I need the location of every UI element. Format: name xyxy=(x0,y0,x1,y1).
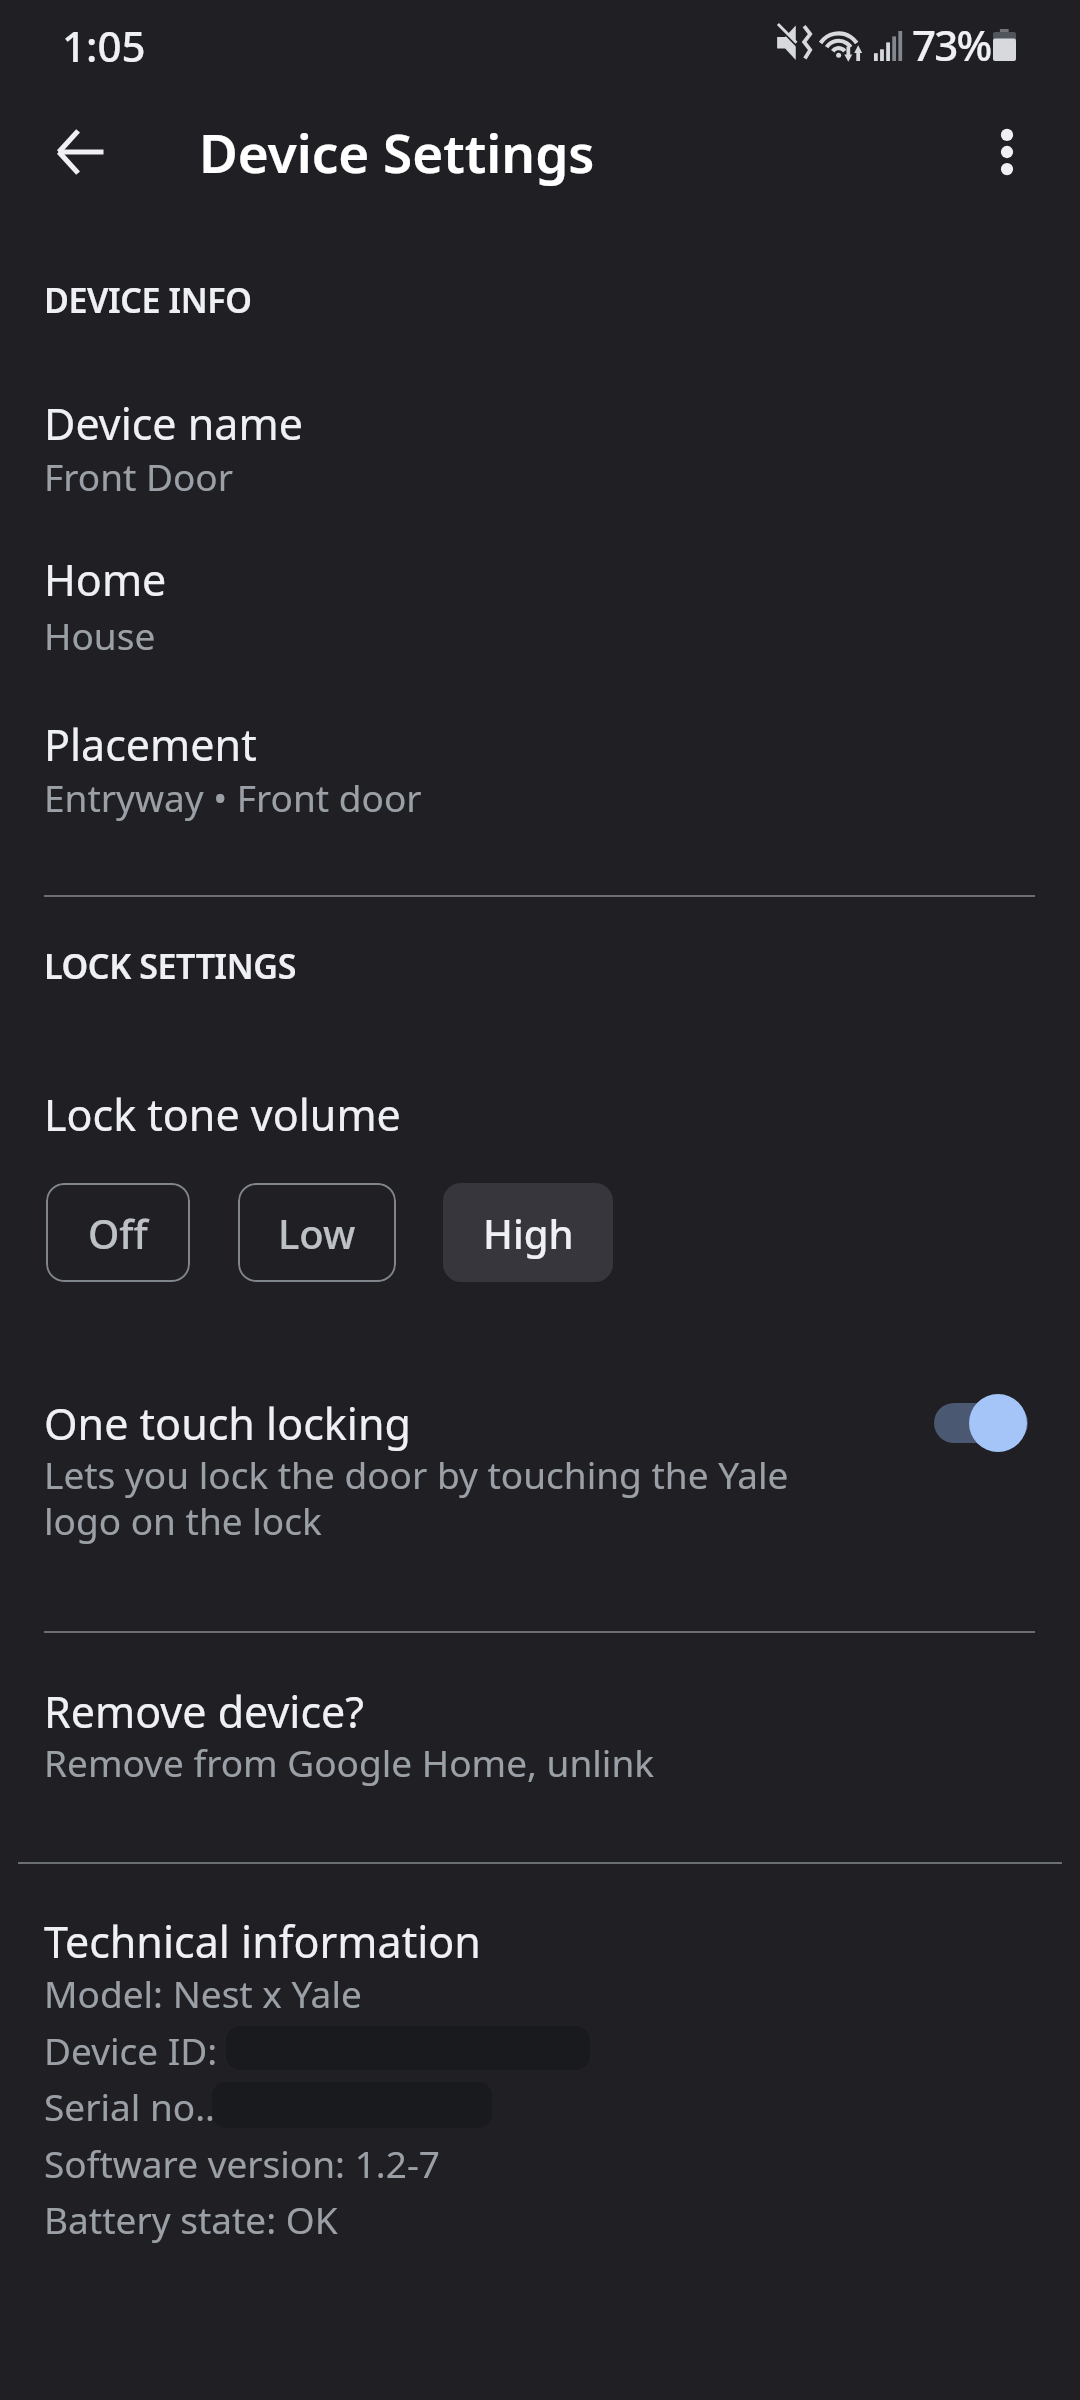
staticText: Model: Nest x Yale xyxy=(44,1968,362,2018)
button[interactable]: Back xyxy=(20,92,140,212)
staticText: Lets you lock the door by touching the Y… xyxy=(44,1449,789,1499)
staticText: Remove device? xyxy=(44,1682,364,1741)
staticText: Remove from Google Home, unlink xyxy=(44,1737,655,1787)
staticText: Software version: 1.2-7 xyxy=(44,2138,440,2188)
staticText: Device name xyxy=(44,394,303,453)
staticText: DEVICE INFO xyxy=(44,277,252,323)
staticText: Battery state: OK xyxy=(44,2194,338,2244)
staticText: Serial no.. xyxy=(44,2081,216,2131)
button[interactable] xyxy=(0,703,1080,825)
staticText: Device Settings xyxy=(199,116,595,188)
staticText: 1:05 xyxy=(62,17,146,74)
button[interactable]: Off xyxy=(46,1183,190,1282)
staticText: Device ID: xyxy=(44,2025,218,2075)
staticText: Low xyxy=(278,1206,356,1260)
staticText: Lock tone volume xyxy=(44,1085,401,1144)
staticText: Home xyxy=(44,550,167,609)
button[interactable]: One touch locking xyxy=(0,1378,890,1568)
button[interactable]: One touch locking toggle xyxy=(908,1378,1048,1468)
staticText: 73% xyxy=(912,16,991,73)
button[interactable]: Low xyxy=(238,1183,396,1282)
staticText: Technical information xyxy=(44,1912,481,1971)
staticText: High xyxy=(483,1206,574,1260)
staticText: One touch locking xyxy=(44,1394,411,1453)
staticText: LOCK SETTINGS xyxy=(44,943,296,989)
button[interactable] xyxy=(0,380,1080,500)
button[interactable]: More options xyxy=(947,92,1067,212)
button[interactable] xyxy=(0,538,1080,658)
staticText: Off xyxy=(88,1206,148,1260)
staticText: Placement xyxy=(44,715,257,774)
staticText: logo on the lock xyxy=(44,1495,322,1545)
staticText: Entryway • Front door xyxy=(44,772,422,822)
button[interactable]: High xyxy=(443,1183,613,1282)
button[interactable] xyxy=(0,1668,1080,1788)
staticText: House xyxy=(44,610,156,660)
staticText: Front Door xyxy=(44,451,234,501)
